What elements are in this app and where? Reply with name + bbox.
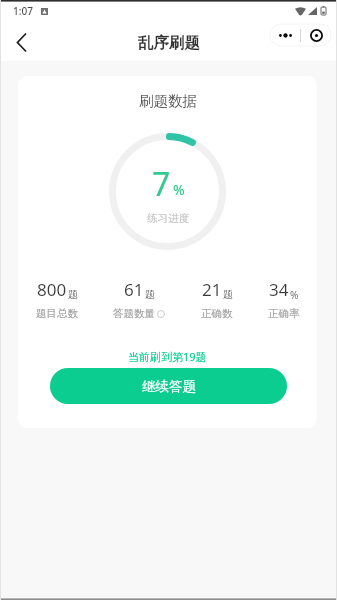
staticText: 正确数 [201,307,233,320]
staticText: % [173,180,185,199]
staticText: 刷题数据 [139,92,197,110]
button[interactable]: More options [270,24,300,46]
staticText: 答题数量 [113,307,155,320]
staticText: 1:07 [13,4,33,18]
staticText: 乱序刷题 [138,33,200,53]
button[interactable]: Back [4,25,38,59]
staticText: 题 [223,288,233,300]
staticText: 21 [202,278,222,301]
staticText: 800 [37,278,67,301]
staticText: 当前刷到第19题 [128,349,207,364]
staticText: 正确率 [268,307,300,320]
staticText: 题 [68,288,78,300]
staticText: 练习进度 [147,212,189,225]
staticText: 继续答题 [142,378,196,395]
staticText: % [290,288,299,300]
staticText: 61 [124,278,144,301]
button[interactable]: 继续答题 [50,368,287,404]
button[interactable]: Close mini program [301,24,331,46]
staticText: 34 [269,278,289,301]
staticText: 题 [145,288,155,300]
staticText: 7 [152,162,171,206]
staticText: 题目总数 [36,307,78,320]
